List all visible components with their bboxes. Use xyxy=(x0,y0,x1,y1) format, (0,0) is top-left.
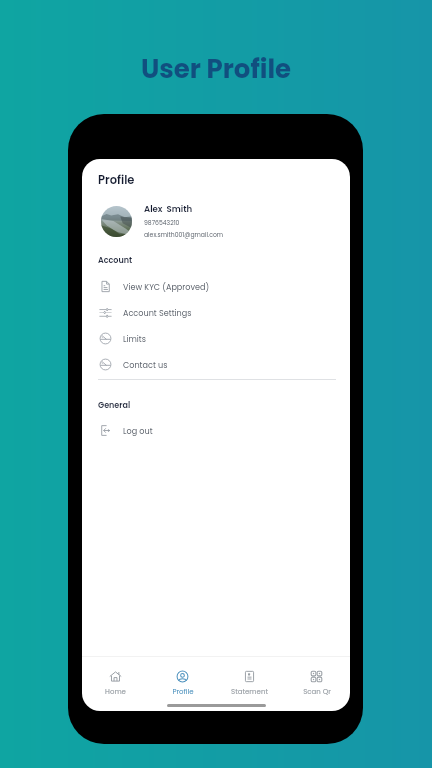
staticText: alex.smith001@gmail.com xyxy=(144,231,224,240)
button[interactable]: Home xyxy=(82,657,149,697)
staticText: View KYC (Approved) xyxy=(123,281,210,292)
button[interactable]: View KYC (Approved) xyxy=(82,273,350,299)
button[interactable]: Limits xyxy=(82,325,350,351)
staticText: Profile xyxy=(98,172,135,188)
staticText: Scan Qr xyxy=(303,687,331,697)
staticText: Limits xyxy=(123,333,146,344)
staticText: Home xyxy=(105,687,126,697)
button[interactable]: Scan Qr xyxy=(283,657,350,697)
button[interactable]: Log out xyxy=(82,417,350,443)
staticText: Profile xyxy=(172,687,194,697)
button[interactable]: Profile xyxy=(149,657,216,697)
staticText: Contact us xyxy=(123,359,168,370)
staticText: User Profile xyxy=(141,51,292,87)
button[interactable]: Contact us xyxy=(82,351,350,377)
staticText: 9876543210 xyxy=(144,219,180,228)
staticText: Log out xyxy=(123,425,153,436)
staticText: Alex Smith xyxy=(144,203,193,215)
staticText: Account xyxy=(98,255,133,266)
button[interactable]: Statement xyxy=(216,657,283,697)
staticText: Account Settings xyxy=(123,307,192,318)
button[interactable]: Account Settings xyxy=(82,299,350,325)
staticText: General xyxy=(98,400,131,411)
staticText: Statement xyxy=(231,687,268,697)
